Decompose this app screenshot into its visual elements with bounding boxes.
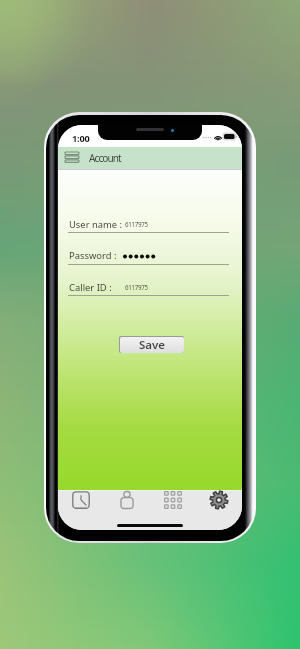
staticText: 1:00 [72, 132, 90, 145]
button[interactable]: Settings [196, 490, 242, 520]
staticText: Save [139, 337, 166, 353]
button[interactable]: Menu [58, 147, 242, 169]
staticText: Password : [69, 249, 117, 262]
button[interactable]: Contacts [104, 490, 150, 520]
button[interactable]: Recents [58, 490, 104, 520]
staticText: Account [89, 151, 121, 165]
staticText: Caller ID : [69, 281, 112, 294]
button[interactable]: Keypad [150, 490, 196, 520]
staticText: 6117975 [125, 220, 148, 228]
button[interactable]: Save [119, 336, 184, 353]
button[interactable]: Menu [62, 149, 82, 167]
staticText: User name : [69, 218, 123, 231]
staticText: 6117975 [125, 283, 148, 291]
